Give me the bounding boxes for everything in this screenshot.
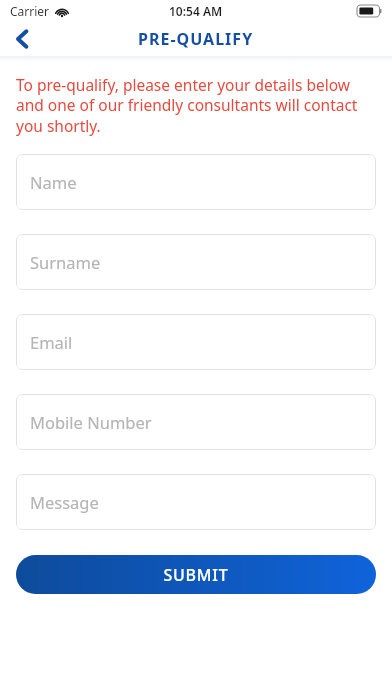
button[interactable]: Email: [16, 314, 376, 370]
staticText: To pre-qualify, please enter your detail…: [16, 74, 376, 137]
staticText: Mobile Number: [30, 411, 152, 433]
staticText: Surname: [30, 251, 101, 273]
staticText: 10:54 AM: [169, 3, 223, 19]
staticText: Email: [30, 331, 73, 353]
button[interactable]: Message: [16, 474, 376, 530]
button[interactable]: Name: [16, 154, 376, 210]
button[interactable]: Mobile Number: [16, 394, 376, 450]
staticText: PRE-QUALIFY: [138, 28, 254, 50]
button[interactable]: SUBMIT: [16, 555, 376, 594]
staticText: Name: [30, 171, 77, 193]
button[interactable]: Surname: [16, 234, 376, 290]
staticText: Message: [30, 491, 99, 513]
staticText: SUBMIT: [163, 564, 229, 586]
button[interactable]: Back: [0, 22, 44, 56]
staticText: Carrier: [10, 3, 50, 19]
